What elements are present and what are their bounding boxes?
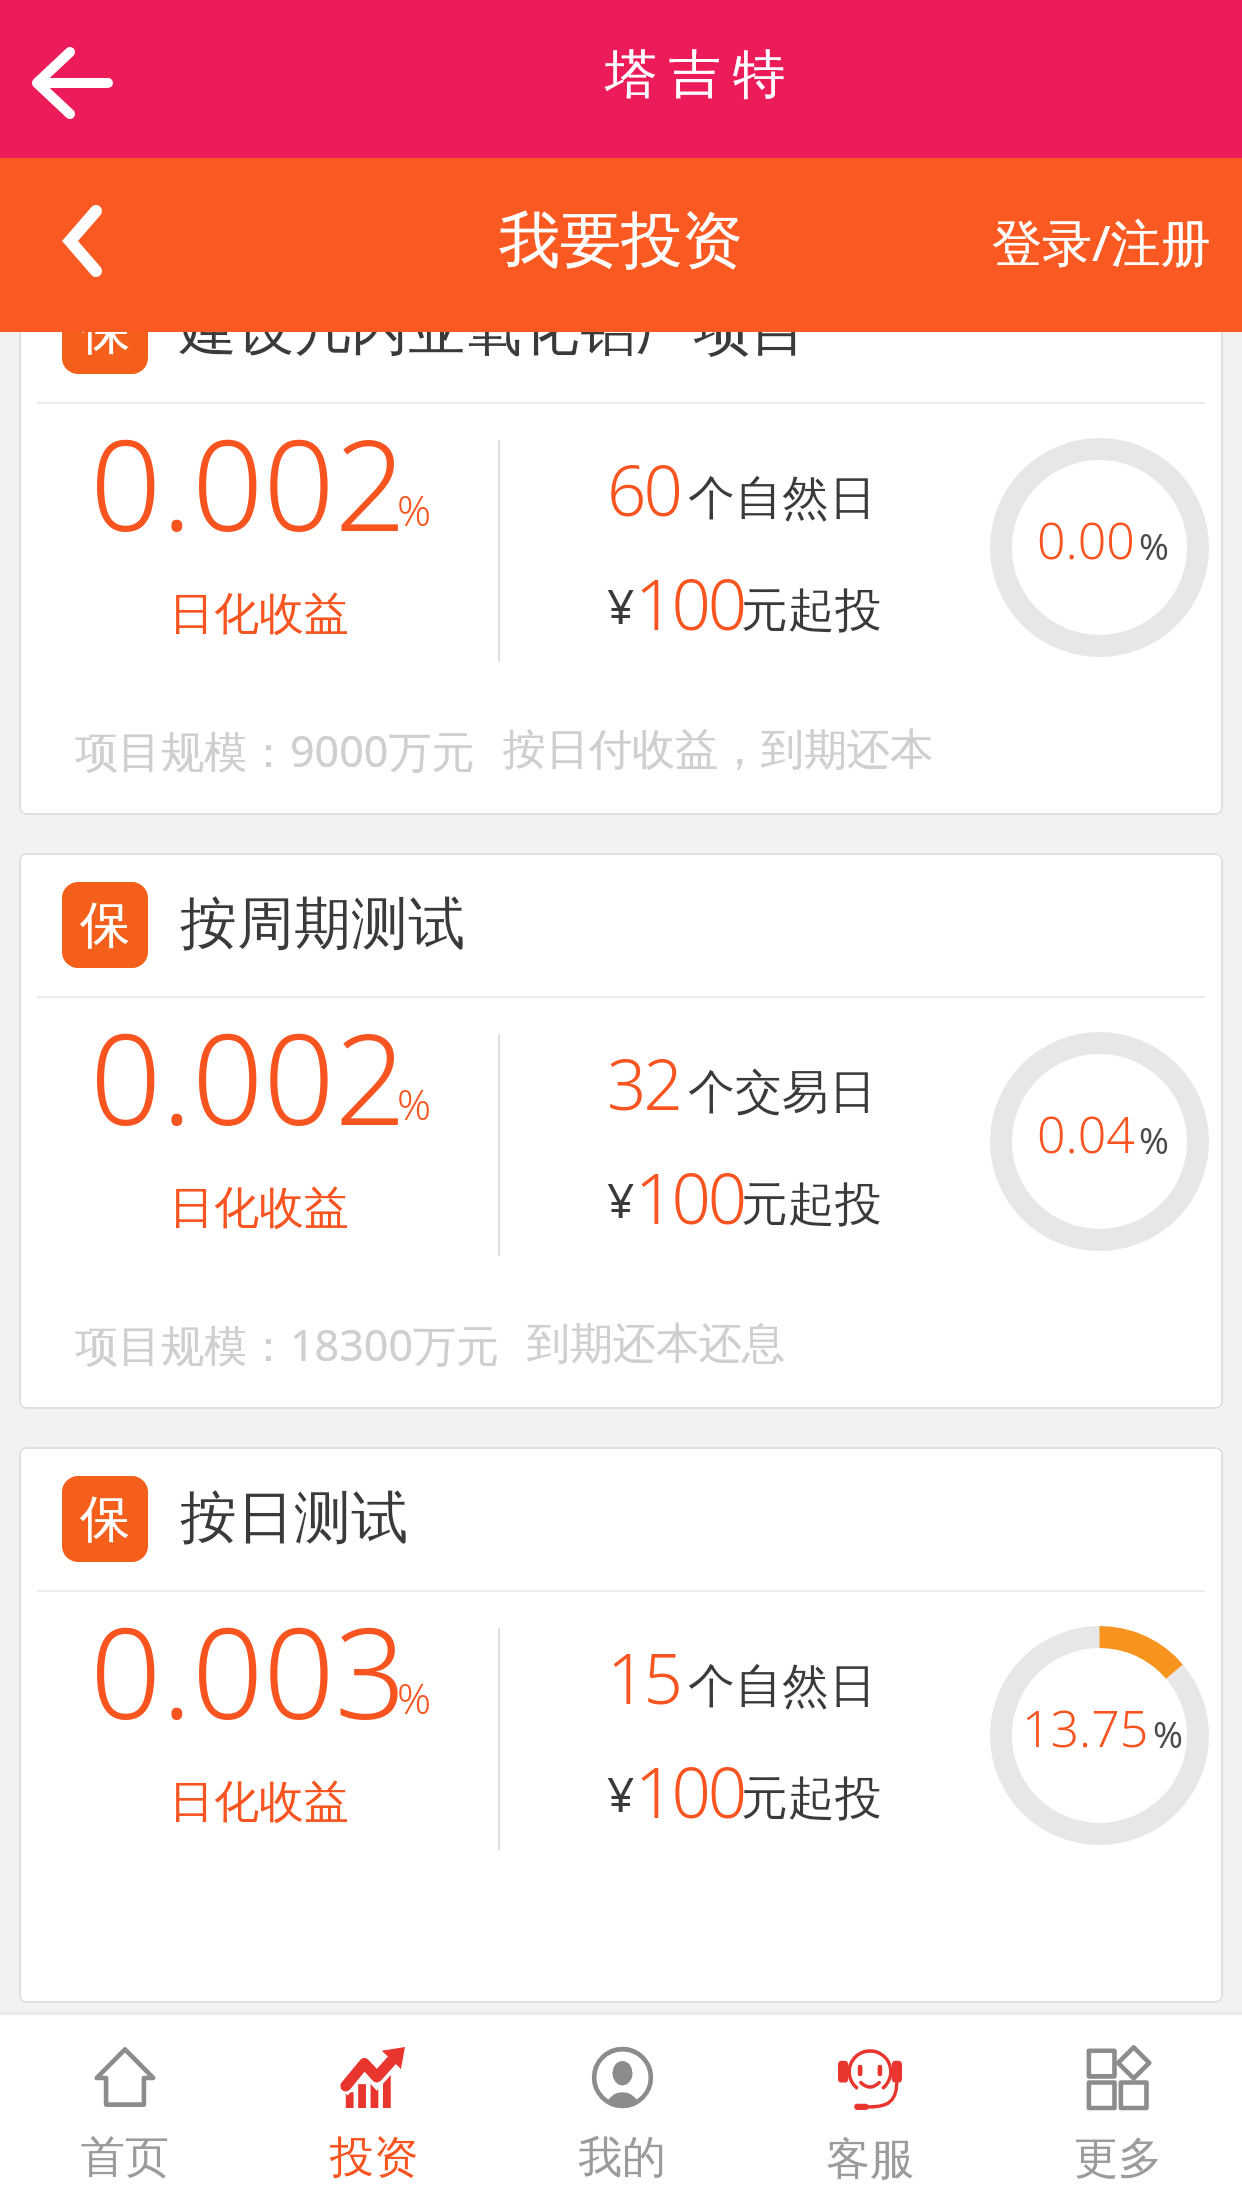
- staticText: 更多: [1074, 2131, 1162, 2186]
- button[interactable]: 更多: [994, 2015, 1242, 2208]
- staticText: 项目规模：9000万元: [75, 721, 475, 780]
- staticText: 保: [80, 1488, 130, 1551]
- button[interactable]: 客服: [746, 2015, 994, 2208]
- staticText: 个自然日: [688, 1657, 876, 1716]
- staticText: 0.00: [1037, 506, 1135, 574]
- staticText: 项目规模：18300万元: [75, 1315, 499, 1374]
- button[interactable]: Back: [10, 23, 130, 143]
- button[interactable]: 保: [19, 853, 1223, 1409]
- staticText: ¥: [607, 1761, 635, 1826]
- staticText: %: [1153, 1710, 1183, 1759]
- staticText: %: [397, 1075, 432, 1132]
- staticText: 100: [635, 1150, 745, 1244]
- staticText: 日化收益: [169, 1774, 349, 1831]
- staticText: 我的: [578, 2130, 666, 2185]
- button[interactable]: Back: [28, 186, 138, 296]
- staticText: 15: [607, 1630, 680, 1724]
- staticText: 按周期测试: [180, 888, 465, 960]
- button[interactable]: 登录/注册: [976, 199, 1227, 291]
- staticText: 到期还本还息: [527, 1317, 785, 1371]
- staticText: 32: [607, 1036, 680, 1130]
- staticText: 日化收益: [169, 586, 349, 643]
- staticText: 100: [635, 1744, 745, 1838]
- staticText: 保: [80, 894, 130, 957]
- staticText: 客服: [826, 2132, 914, 2187]
- staticText: 按日付收益，到期还本: [503, 723, 933, 777]
- staticText: 建设几内亚氧化铝厂项目: [180, 332, 807, 366]
- staticText: 60: [607, 442, 680, 536]
- staticText: ¥: [607, 1167, 635, 1232]
- staticText: 0.003: [90, 1585, 406, 1755]
- staticText: 0.002: [90, 397, 406, 567]
- staticText: 100: [635, 556, 745, 650]
- button[interactable]: 保: [19, 332, 1223, 815]
- staticText: 0.002: [90, 991, 406, 1161]
- staticText: %: [1139, 522, 1169, 571]
- button[interactable]: 保: [19, 1447, 1223, 2003]
- staticText: 个交易日: [688, 1063, 876, 1122]
- staticText: 首页: [81, 2130, 169, 2185]
- staticText: 13.75: [1022, 1694, 1149, 1762]
- staticText: 登录/注册: [992, 208, 1211, 276]
- staticText: 个自然日: [688, 469, 876, 528]
- staticText: 按日测试: [180, 1482, 408, 1554]
- staticText: 日化收益: [169, 1180, 349, 1237]
- button[interactable]: 我的: [498, 2015, 746, 2208]
- staticText: 元起投: [741, 1175, 882, 1234]
- staticText: %: [1139, 1116, 1169, 1165]
- staticText: %: [397, 1669, 432, 1726]
- staticText: ¥: [607, 573, 635, 638]
- staticText: %: [397, 481, 432, 538]
- staticText: 我要投资: [499, 202, 743, 279]
- staticText: 投资: [330, 2130, 418, 2185]
- button[interactable]: 投资: [249, 2015, 498, 2208]
- staticText: 元起投: [741, 1769, 882, 1828]
- staticText: 保: [80, 332, 130, 363]
- staticText: 0.04: [1037, 1100, 1135, 1168]
- button[interactable]: 首页: [0, 2015, 249, 2208]
- staticText: 元起投: [741, 581, 882, 640]
- staticText: 塔吉特: [599, 42, 791, 108]
